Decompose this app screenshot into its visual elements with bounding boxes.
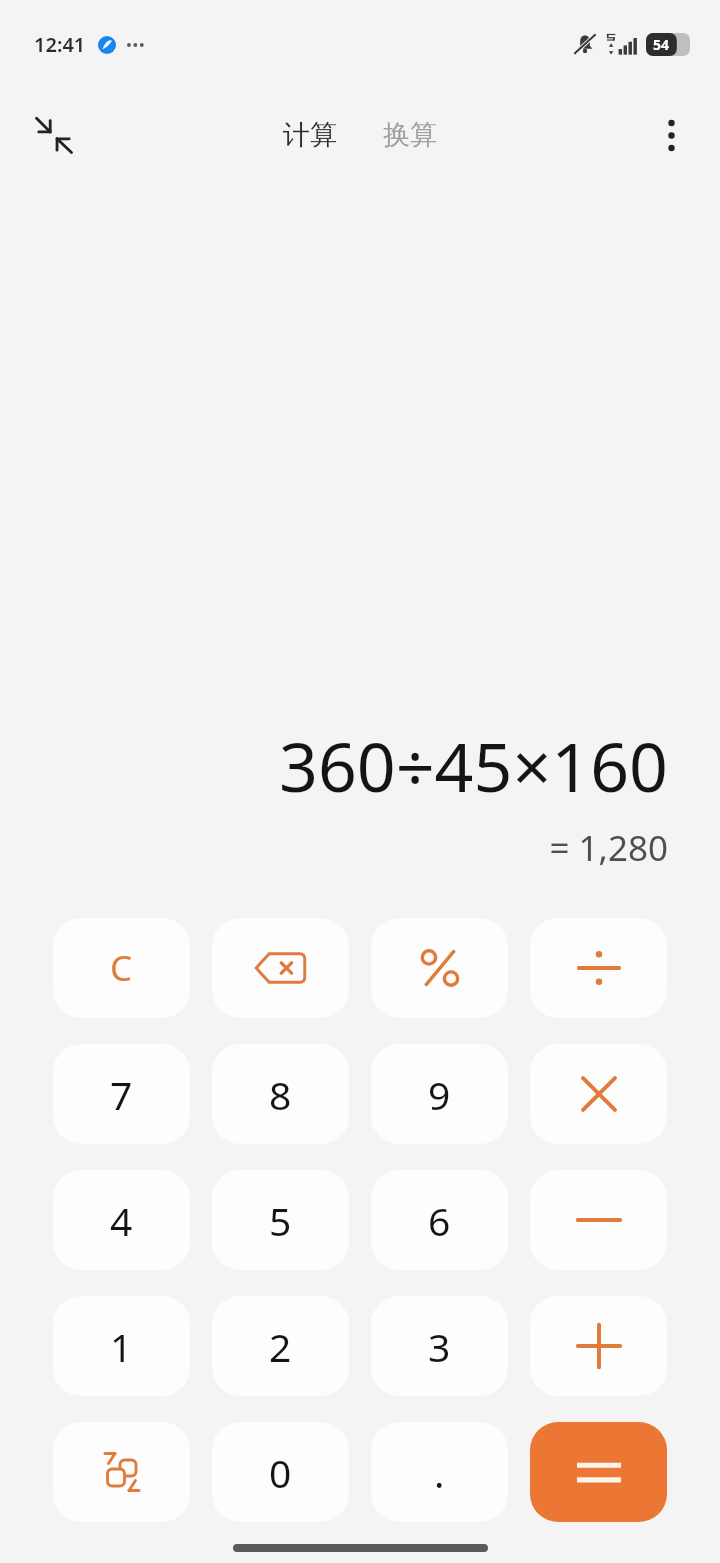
staticText: 换算 [383,118,437,152]
button[interactable]: 3 [371,1296,508,1396]
button[interactable]: 计算 [273,110,347,160]
button[interactable]: More options [642,106,700,164]
staticText: = 1,280 [549,824,668,872]
staticText: 3 [428,1320,451,1373]
button[interactable]: Plus [530,1296,667,1396]
staticText: 1 [110,1320,133,1373]
staticText: 360÷45×160 [279,719,668,812]
button[interactable]: 8 [212,1044,349,1144]
button[interactable]: 5 [212,1170,349,1270]
button[interactable]: 4 [53,1170,190,1270]
staticText: 12:41 [34,31,86,58]
button[interactable]: Minus [530,1170,667,1270]
button[interactable]: 9 [371,1044,508,1144]
staticText: 0 [269,1446,292,1499]
button[interactable]: 7 [53,1044,190,1144]
button[interactable]: 2 [212,1296,349,1396]
staticText: C [110,944,133,992]
button[interactable]: Percent [371,918,508,1018]
button[interactable]: Equals [530,1422,667,1522]
staticText: 计算 [283,118,337,152]
button[interactable]: Collapse [22,103,86,167]
staticText: 5 [269,1194,292,1247]
button[interactable]: 6 [371,1170,508,1270]
staticText: 9 [428,1068,451,1121]
staticText: 8 [269,1068,292,1121]
button[interactable]: 0 [212,1422,349,1522]
staticText: 54 [653,35,670,54]
staticText: 6 [428,1194,451,1247]
staticText: . [434,1446,445,1499]
staticText: 2 [269,1320,292,1373]
button[interactable]: Multiply [530,1044,667,1144]
button[interactable]: 1 [53,1296,190,1396]
button[interactable]: Backspace [212,918,349,1018]
button[interactable]: Divide [530,918,667,1018]
staticText: 4 [110,1194,133,1247]
button[interactable]: Clear [53,918,190,1018]
staticText: 7 [110,1068,133,1121]
button[interactable]: . [371,1422,508,1522]
button[interactable]: Convert units [53,1422,190,1522]
button[interactable]: 换算 [373,110,447,160]
